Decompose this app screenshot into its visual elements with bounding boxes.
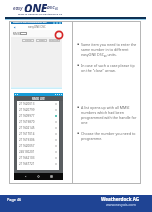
button[interactable]: 211667721 <box>19 161 57 167</box>
staticText: Weatherdock AG <box>101 196 140 202</box>
staticText: 211619870 <box>19 120 35 124</box>
staticText: 211620013 <box>19 102 35 106</box>
staticText: Program <box>50 39 59 42</box>
staticText: 211609977 <box>19 114 35 118</box>
staticText: Made in Germany by Weatherdock AG <box>18 12 63 15</box>
button[interactable]: 211662103 <box>19 155 57 161</box>
staticText: 40 <box>55 7 58 11</box>
staticText: easyONE DSC Programming Tool <box>13 21 47 24</box>
button[interactable]: 211609977 <box>19 113 57 119</box>
staticText: DSC <box>47 5 55 11</box>
staticText: ▪ <box>77 63 80 66</box>
button[interactable]: 211620799 <box>19 107 57 113</box>
staticText: 211620799 <box>19 108 35 112</box>
staticText: ONE <box>24 1 47 12</box>
staticText: 211667721 <box>19 162 35 166</box>
button[interactable]: 211620013 <box>19 101 57 107</box>
button[interactable]: Select <box>36 39 47 42</box>
staticText: 211617014 <box>19 132 35 136</box>
button[interactable]: 211617014 <box>19 131 57 137</box>
staticText: MMSI <box>13 32 21 36</box>
button[interactable]: Home <box>37 175 40 178</box>
button[interactable]: 211602145 <box>19 125 57 131</box>
staticText: Select <box>39 39 45 42</box>
staticText: MMSI LIST <box>32 97 45 101</box>
button[interactable]: 211619870 <box>19 119 57 125</box>
staticText: Cancel <box>25 39 32 42</box>
button[interactable]: Back <box>24 175 27 178</box>
staticText: 211620057 <box>19 144 35 148</box>
staticText: 245130201 <box>19 150 35 154</box>
button[interactable]: Cancel <box>22 39 34 42</box>
button[interactable]: Program <box>49 39 60 42</box>
staticText: 211619306 <box>19 138 35 142</box>
staticText: In case of such a case please tip on the… <box>81 63 137 73</box>
staticText: Choose the number you need to programme. <box>81 131 137 141</box>
staticText: ▪ <box>77 105 80 108</box>
button[interactable]: Recents <box>50 175 53 178</box>
button[interactable]: 245130201 <box>19 149 57 155</box>
staticText: www.easyais.com <box>106 202 136 207</box>
staticText: 211602145 <box>19 126 35 130</box>
staticText: Page 46 <box>7 197 22 202</box>
staticText: A list opens up with all MMSI numbers wh… <box>81 105 137 125</box>
staticText: easy <box>13 5 23 11</box>
staticText: Same item you need to enter the same num… <box>81 42 137 57</box>
button[interactable]: 211620057 <box>19 143 57 149</box>
staticText: easyONE DSC <box>28 25 46 29</box>
staticText: ▪ <box>77 131 80 134</box>
staticText: 211662103 <box>19 156 35 160</box>
staticText: ▪ <box>77 42 80 45</box>
button[interactable]: 211619306 <box>19 137 57 143</box>
